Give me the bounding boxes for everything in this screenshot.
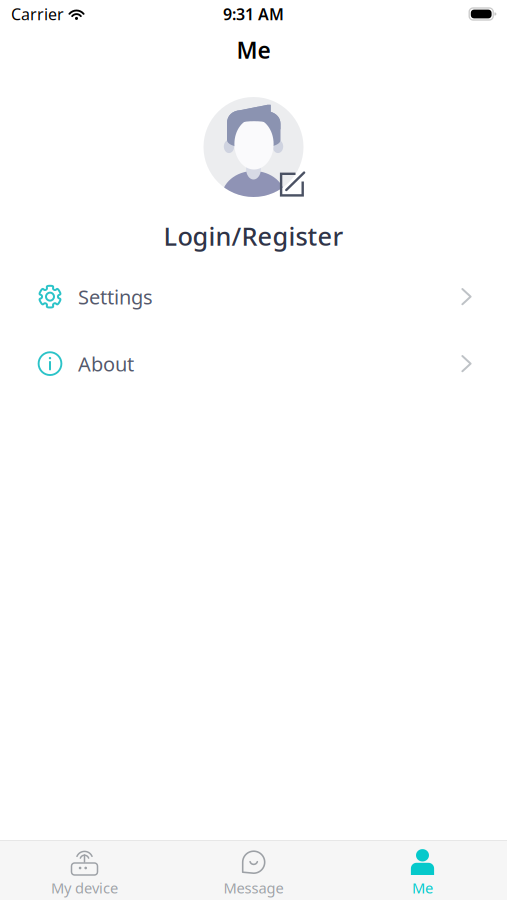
staticText: About [78,350,134,377]
button[interactable]: About [0,336,507,392]
staticText: Login/Register [163,219,343,253]
button[interactable]: My device [0,841,169,900]
button[interactable]: Login/Register [163,197,343,257]
staticText: Message [223,878,283,897]
staticText: Settings [78,283,153,310]
button[interactable]: Message [169,841,338,900]
button[interactable]: Me [338,841,507,900]
staticText: Carrier [11,3,64,25]
staticText: My device [51,878,118,897]
button[interactable]: Edit profile picture [279,172,305,197]
staticText: 9:31 AM [223,3,284,25]
staticText: Me [412,878,433,897]
button[interactable]: Settings [0,269,507,325]
staticText: Me [236,35,270,65]
